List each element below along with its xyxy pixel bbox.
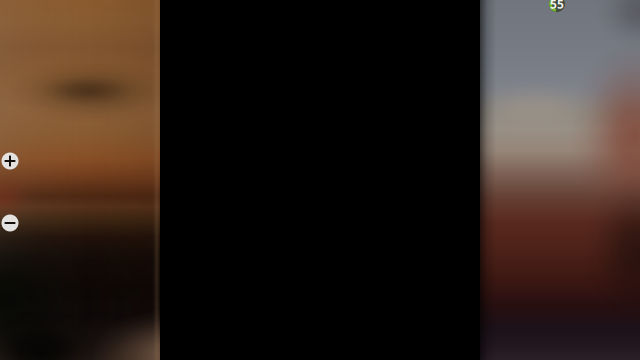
button[interactable]: Zoom in	[1, 152, 18, 169]
staticText: 55	[550, 0, 564, 12]
button[interactable]: Zoom out	[1, 214, 18, 231]
